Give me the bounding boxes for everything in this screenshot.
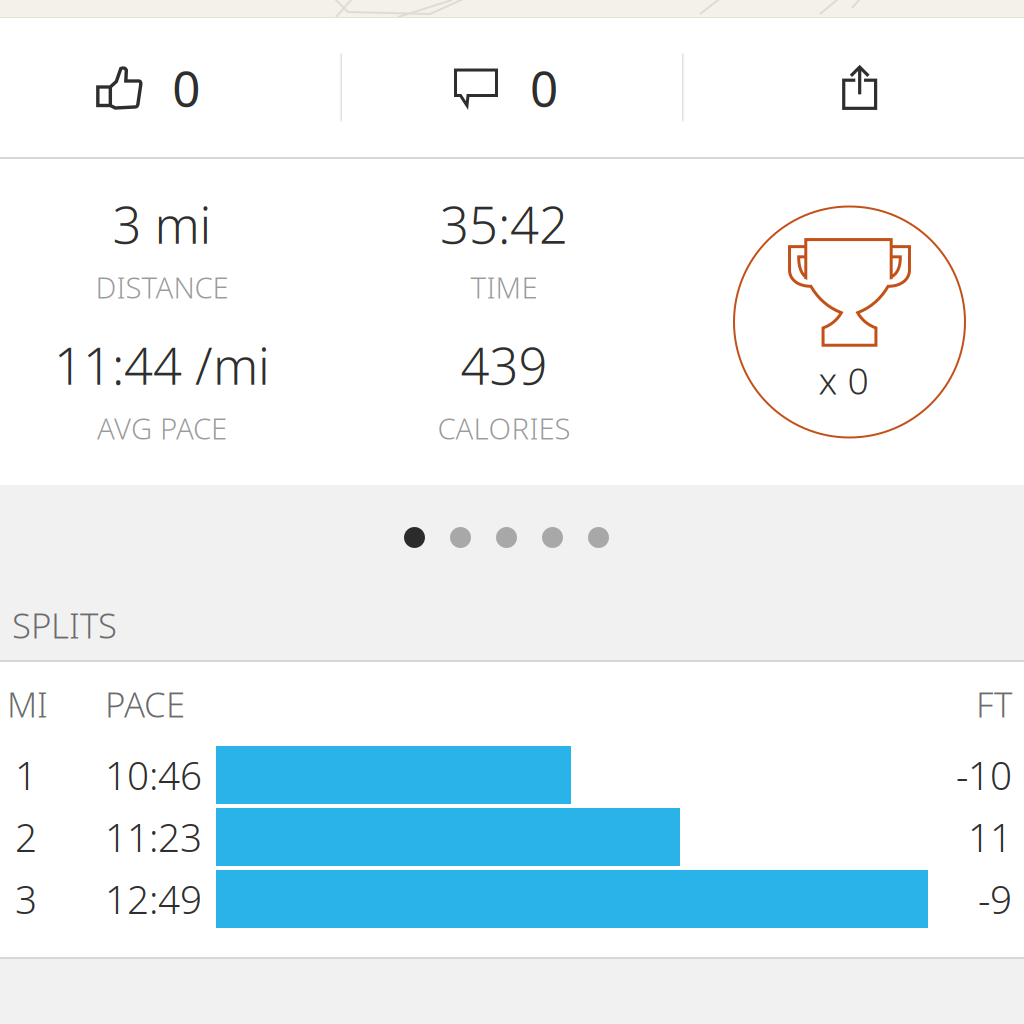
staticText: 0 xyxy=(530,55,558,120)
staticText: 11:44 /mi xyxy=(54,331,270,399)
staticText: -10 xyxy=(956,749,1012,801)
staticText: -9 xyxy=(978,873,1012,925)
staticText: DISTANCE xyxy=(95,267,228,306)
staticText: AVG PACE xyxy=(97,408,227,447)
staticText: 35:42 xyxy=(440,190,568,258)
staticText: 1 xyxy=(15,749,37,801)
staticText: FT xyxy=(976,681,1012,727)
staticText: 439 xyxy=(460,331,547,399)
staticText: 3 mi xyxy=(112,190,211,258)
staticText: CALORIES xyxy=(437,408,570,447)
staticText: MI xyxy=(7,681,48,727)
staticText: TIME xyxy=(470,267,537,306)
staticText: 2 xyxy=(15,811,37,863)
staticText: 11 xyxy=(968,811,1012,863)
staticText: PACE xyxy=(105,681,185,727)
staticText: x 0 xyxy=(818,355,868,405)
staticText: SPLITS xyxy=(12,602,117,648)
staticText: 0 xyxy=(172,55,200,120)
button[interactable]: 0 xyxy=(342,18,682,157)
staticText: 12:49 xyxy=(105,873,202,925)
staticText: 10:46 xyxy=(105,749,202,801)
button[interactable]: 0 xyxy=(0,18,341,157)
button[interactable]: Share xyxy=(683,18,1024,157)
staticText: 3 xyxy=(15,873,37,925)
staticText: 11:23 xyxy=(105,811,202,863)
